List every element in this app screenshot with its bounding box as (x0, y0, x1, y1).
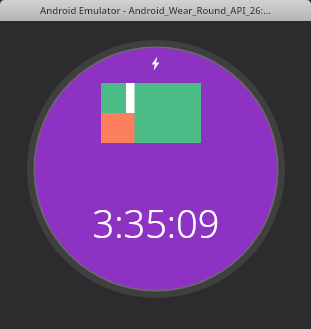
button[interactable]: Charging (148, 56, 163, 71)
button[interactable]: Image (101, 83, 201, 143)
staticText: Android Emulator - Android_Wear_Round_AP… (40, 4, 271, 17)
button[interactable]: 3:35:09 (92, 197, 220, 249)
